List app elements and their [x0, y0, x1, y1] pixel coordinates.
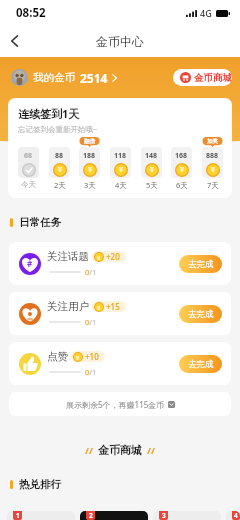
staticText: ¥	[97, 304, 101, 311]
staticText: 5天	[146, 180, 158, 190]
staticText: 翻倍	[84, 138, 95, 145]
staticText: 去完成	[188, 359, 214, 370]
staticText: 888	[206, 151, 219, 161]
button[interactable]: 188	[79, 147, 100, 178]
staticText: 0/1	[85, 317, 97, 327]
staticText: ¥	[58, 165, 63, 175]
staticText: 4天	[115, 180, 127, 190]
button[interactable]: 去完成	[179, 305, 222, 323]
staticText: 我的金币	[33, 71, 75, 84]
staticText: 热兑排行	[19, 478, 61, 491]
staticText: ¥	[88, 165, 93, 175]
staticText: 88	[55, 151, 64, 161]
staticText: //	[85, 444, 93, 457]
staticText: 118	[114, 151, 127, 161]
staticText: +15	[106, 301, 120, 312]
staticText: #	[27, 258, 33, 269]
staticText: +10	[85, 351, 99, 362]
staticText: 去完成	[188, 259, 214, 270]
button[interactable]: 关注用户	[9, 292, 231, 335]
staticText: 6天	[176, 180, 188, 190]
staticText: 去完成	[188, 309, 214, 320]
staticText: ¥	[119, 165, 124, 175]
staticText: 忘记签到会重新开始哦~	[18, 124, 98, 134]
staticText: 7天	[207, 180, 219, 190]
button[interactable]: 去完成	[179, 255, 222, 273]
staticText: 2天	[54, 180, 66, 190]
staticText: 148	[145, 151, 158, 161]
staticText: 2514	[80, 70, 108, 86]
staticText: 关注话题	[47, 250, 89, 263]
staticText: ¥	[211, 165, 216, 175]
button[interactable]: 2	[80, 511, 148, 520]
button[interactable]: 点赞	[9, 342, 231, 385]
button[interactable]: 148	[141, 147, 162, 178]
staticText: ¥	[180, 165, 185, 175]
staticText: 2	[89, 511, 93, 520]
button[interactable]: 金币商城	[173, 69, 232, 86]
button[interactable]: 4	[226, 511, 240, 520]
staticText: 今天	[21, 180, 36, 189]
staticText: 加奖	[207, 138, 218, 145]
button[interactable]: 888	[202, 147, 223, 178]
staticText: 点赞	[47, 350, 68, 363]
staticText: 68	[24, 151, 33, 161]
staticText: 日常任务	[19, 216, 61, 229]
staticText: 4G	[200, 7, 212, 19]
staticText: 1	[16, 511, 20, 520]
button[interactable]: 88	[49, 147, 70, 178]
button[interactable]: 168	[171, 147, 192, 178]
button[interactable]: 1	[7, 511, 75, 520]
staticText: 3天	[84, 180, 96, 190]
staticText: ¥	[150, 165, 155, 175]
staticText: 关注用户	[47, 300, 89, 313]
button[interactable]: Back	[0, 27, 28, 55]
staticText: //	[147, 444, 155, 457]
staticText: 08:52	[16, 5, 46, 21]
staticText: ¥	[97, 254, 101, 261]
staticText: 连续签到1天	[18, 106, 80, 121]
staticText: ¥	[76, 354, 80, 361]
staticText: 3	[162, 511, 166, 520]
staticText: 0/1	[85, 267, 97, 277]
staticText: 168	[175, 151, 188, 161]
staticText: 金币商城	[194, 72, 232, 84]
staticText: 金币中心	[96, 34, 144, 49]
staticText: 4	[234, 511, 238, 520]
staticText: 188	[83, 151, 96, 161]
staticText: 0/1	[85, 367, 97, 377]
button[interactable]: 3	[153, 511, 221, 520]
staticText: 金币商城	[98, 443, 142, 457]
button[interactable]: 68	[18, 147, 39, 178]
staticText: 展示剩余5个，再赚115金币	[66, 399, 165, 410]
button[interactable]: 去完成	[179, 355, 222, 373]
button[interactable]: 118	[110, 147, 131, 178]
staticText: +20	[106, 251, 120, 262]
button[interactable]: 展示剩余5个，再赚115金币	[9, 392, 231, 416]
button[interactable]: #	[9, 242, 231, 285]
